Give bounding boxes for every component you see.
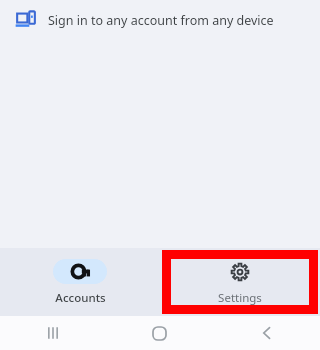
staticText: Settings — [218, 290, 262, 306]
staticText: Sign in to any account from any device — [48, 12, 274, 29]
button[interactable]: Back — [213, 316, 320, 350]
button[interactable]: Devices — [0, 0, 320, 40]
button[interactable]: Accounts — [0, 248, 160, 316]
button[interactable]: Settings — [160, 248, 320, 316]
staticText: Accounts — [55, 290, 106, 306]
button[interactable]: Home — [106, 316, 213, 350]
button[interactable]: Recents — [0, 316, 106, 350]
other: Devices — [15, 9, 37, 31]
